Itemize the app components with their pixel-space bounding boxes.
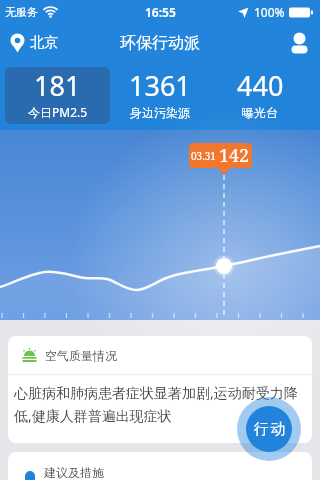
staticText: 行动 (253, 420, 286, 439)
staticText: 低,健康人群普遍出现症状 (14, 406, 172, 425)
staticText: 北京 (30, 34, 58, 52)
staticText: 142 (219, 143, 250, 168)
staticText: 空气质量情况 (45, 348, 117, 363)
button[interactable]: 建议及措施 (8, 452, 312, 480)
button[interactable]: 03.31 (189, 143, 252, 168)
button[interactable]: 440 (210, 67, 310, 124)
button[interactable]: 行动 (246, 406, 292, 452)
button[interactable]: 北京 (10, 33, 58, 53)
staticText: 建议及措施 (44, 465, 104, 480)
button[interactable]: 181 (5, 67, 110, 124)
button[interactable]: 1361 (110, 67, 210, 124)
staticText: 今日PM2.5 (28, 104, 88, 120)
button[interactable]: 空气质量情况 (8, 336, 312, 374)
staticText: 181 (34, 67, 81, 103)
staticText: 曝光台 (242, 105, 278, 120)
button[interactable] (5, 67, 110, 124)
staticText: 440 (237, 67, 284, 103)
button[interactable] (288, 32, 310, 54)
staticText: 1361 (129, 67, 191, 103)
staticText: 无服务 (5, 5, 38, 19)
staticText: 环保行动派 (120, 33, 200, 53)
staticText: 身边污染源 (130, 105, 190, 120)
staticText: 心脏病和肺病患者症状显著加剧,运动耐受力降 (14, 383, 298, 402)
staticText: 100% (254, 4, 285, 20)
staticText: 16:55 (145, 4, 176, 20)
staticText: 03.31 (191, 149, 216, 163)
